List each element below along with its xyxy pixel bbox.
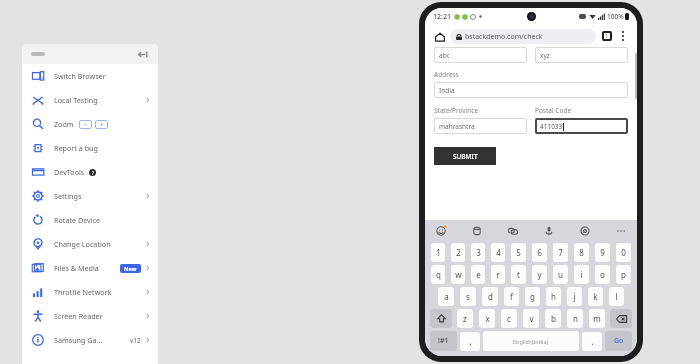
- button[interactable]: Tabs: [600, 29, 614, 43]
- button[interactable]: o: [595, 265, 610, 284]
- staticText: Zoom: [54, 119, 74, 129]
- staticText: Report a bug: [54, 143, 98, 153]
- button[interactable]: m: [589, 309, 605, 328]
- button[interactable]: .: [582, 332, 602, 351]
- button[interactable]: bstackdemo.com/check: [450, 29, 596, 44]
- staticText: b: [551, 313, 556, 324]
- button[interactable]: Throttle Network: [22, 280, 158, 304]
- button[interactable]: 9: [595, 243, 610, 262]
- button[interactable]: v: [523, 309, 539, 328]
- staticText: DevTools: [54, 167, 85, 177]
- button[interactable]: clip: [470, 224, 484, 238]
- staticText: 4: [496, 247, 501, 258]
- button[interactable]: 0: [616, 243, 631, 262]
- button[interactable]: 1: [431, 243, 445, 262]
- button[interactable]: Zoom: [22, 112, 158, 136]
- button[interactable]: q: [431, 265, 445, 284]
- staticText: Postal Code: [535, 106, 572, 115]
- button[interactable]: r: [491, 265, 505, 284]
- button[interactable]: ,: [460, 332, 480, 351]
- button[interactable]: e: [471, 265, 485, 284]
- button[interactable]: Switch Browser: [22, 64, 158, 88]
- staticText: g: [530, 291, 535, 302]
- button[interactable]: 5: [511, 243, 526, 262]
- button[interactable]: w: [451, 265, 465, 284]
- staticText: x: [485, 313, 490, 324]
- button[interactable]: sticker: [506, 224, 520, 238]
- button[interactable]: emoji: [434, 224, 448, 238]
- button[interactable]: j: [567, 287, 582, 306]
- button[interactable]: a: [438, 287, 454, 306]
- button[interactable]: English(India): [483, 331, 579, 351]
- staticText: mahrashtra: [439, 122, 475, 131]
- button[interactable]: Collapse panel: [135, 47, 149, 61]
- button[interactable]: g: [525, 287, 540, 306]
- staticText: ?: [92, 170, 94, 176]
- staticText: w: [455, 269, 462, 280]
- button[interactable]: x: [479, 309, 495, 328]
- button[interactable]: z: [457, 309, 473, 328]
- staticText: 0: [621, 247, 626, 258]
- button[interactable]: c: [501, 309, 517, 328]
- button[interactable]: l: [609, 287, 624, 306]
- staticText: q: [436, 269, 441, 280]
- staticText: SUBMIT: [453, 152, 478, 161]
- staticText: Files & Media: [54, 263, 99, 273]
- staticText: c: [507, 313, 511, 324]
- button[interactable]: 4: [491, 243, 505, 262]
- button[interactable]: k: [588, 287, 603, 306]
- button[interactable]: Samsung Ga...: [22, 328, 158, 352]
- button[interactable]: b: [545, 309, 561, 328]
- button[interactable]: d: [482, 287, 498, 306]
- button[interactable]: mic: [542, 224, 556, 238]
- button[interactable]: Change Location: [22, 232, 158, 256]
- button[interactable]: p: [616, 265, 631, 284]
- button[interactable]: 7: [553, 243, 568, 262]
- staticText: 3: [476, 247, 481, 258]
- button[interactable]: f: [504, 287, 519, 306]
- staticText: j: [573, 291, 576, 302]
- button[interactable]: SUBMIT: [434, 147, 496, 165]
- staticText: v12: [130, 336, 141, 345]
- button[interactable]: Home: [432, 29, 447, 44]
- button[interactable]: y: [532, 265, 547, 284]
- button[interactable]: Settings: [22, 184, 158, 208]
- staticText: Screen Reader: [54, 311, 103, 321]
- button[interactable]: settings: [578, 224, 592, 238]
- staticText: India: [439, 86, 455, 95]
- staticText: d: [488, 291, 493, 302]
- button[interactable]: Shift: [430, 309, 452, 328]
- button[interactable]: Files & Media: [22, 256, 158, 280]
- staticText: t: [517, 269, 520, 280]
- button[interactable]: more: [614, 224, 628, 238]
- button[interactable]: Backspace: [610, 309, 632, 328]
- button[interactable]: Local Testing: [22, 88, 158, 112]
- button[interactable]: Go: [605, 331, 632, 351]
- button[interactable]: More options: [616, 29, 630, 43]
- button[interactable]: h: [546, 287, 561, 306]
- staticText: abc: [439, 51, 450, 60]
- button[interactable]: 2: [451, 243, 465, 262]
- button[interactable]: 6: [532, 243, 547, 262]
- button[interactable]: !#1: [430, 331, 457, 351]
- staticText: 1: [436, 247, 441, 258]
- button[interactable]: 8: [574, 243, 589, 262]
- button[interactable]: Report a bug: [22, 136, 158, 160]
- button[interactable]: Zoom out: [79, 120, 92, 129]
- button[interactable]: i: [574, 265, 589, 284]
- staticText: 6: [537, 247, 542, 258]
- staticText: i: [580, 269, 583, 280]
- button[interactable]: s: [460, 287, 476, 306]
- staticText: Local Testing: [54, 95, 98, 105]
- button[interactable]: n: [567, 309, 583, 328]
- button[interactable]: Zoom in: [95, 120, 108, 129]
- button[interactable]: DevTools: [22, 160, 158, 184]
- button[interactable]: t: [511, 265, 526, 284]
- staticText: l: [615, 291, 618, 302]
- button[interactable]: Rotate Device: [22, 208, 158, 232]
- button[interactable]: Screen Reader: [22, 304, 158, 328]
- button[interactable]: 3: [471, 243, 485, 262]
- staticText: a: [444, 291, 449, 302]
- button[interactable]: u: [553, 265, 568, 284]
- staticText: ,: [469, 336, 472, 347]
